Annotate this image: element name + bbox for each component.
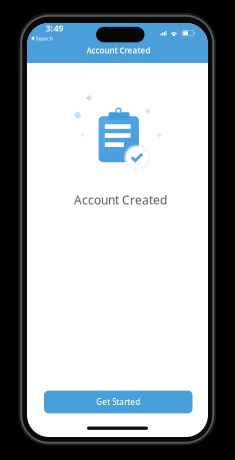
staticText: Get Started — [96, 397, 140, 407]
button[interactable]: Search — [31, 35, 53, 42]
staticText: Account Created — [86, 45, 150, 56]
staticText: Account Created — [74, 192, 167, 208]
staticText: 3:49 — [45, 22, 63, 34]
staticText: Search — [35, 35, 52, 42]
button[interactable]: Get Started — [44, 391, 192, 413]
